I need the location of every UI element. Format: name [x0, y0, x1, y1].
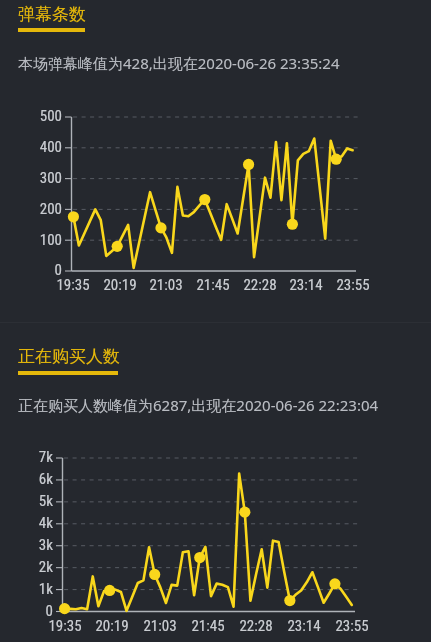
staticText: 100 — [16, 231, 62, 249]
button[interactable]: 弹幕条数 — [18, 4, 86, 25]
staticText: 7k — [7, 448, 53, 466]
staticText: 19:35 — [49, 276, 97, 294]
staticText: 23:14 — [280, 617, 328, 635]
staticText: 本场弹幕峰值为428,出现在2020-06-26 23:35:24 — [18, 53, 340, 73]
staticText: 20:19 — [88, 617, 136, 635]
staticText: 23:55 — [329, 276, 377, 294]
staticText: 22:28 — [236, 276, 284, 294]
staticText: 6k — [7, 470, 53, 488]
staticText: 2k — [7, 558, 53, 576]
staticText: 200 — [16, 200, 62, 218]
staticText: 4k — [7, 514, 53, 532]
staticText: 3k — [7, 536, 53, 554]
staticText: 弹幕条数 — [18, 4, 86, 25]
staticText: 0 — [16, 261, 62, 279]
staticText: 1k — [7, 580, 53, 598]
staticText: 22:28 — [232, 617, 280, 635]
staticText: 19:35 — [41, 617, 89, 635]
staticText: 21:45 — [189, 276, 237, 294]
staticText: 正在购买人数峰值为6287,出现在2020-06-26 22:23:04 — [18, 395, 379, 415]
staticText: 300 — [16, 169, 62, 187]
staticText: 21:03 — [142, 276, 190, 294]
staticText: 500 — [16, 107, 62, 125]
staticText: 23:55 — [328, 617, 376, 635]
staticText: 21:03 — [136, 617, 184, 635]
staticText: 0 — [7, 602, 53, 620]
button[interactable]: 正在购买人数 — [18, 346, 120, 367]
staticText: 23:14 — [282, 276, 330, 294]
staticText: 5k — [7, 492, 53, 510]
staticText: 20:19 — [96, 276, 144, 294]
staticText: 400 — [16, 138, 62, 156]
staticText: 21:45 — [184, 617, 232, 635]
staticText: 正在购买人数 — [18, 346, 120, 367]
